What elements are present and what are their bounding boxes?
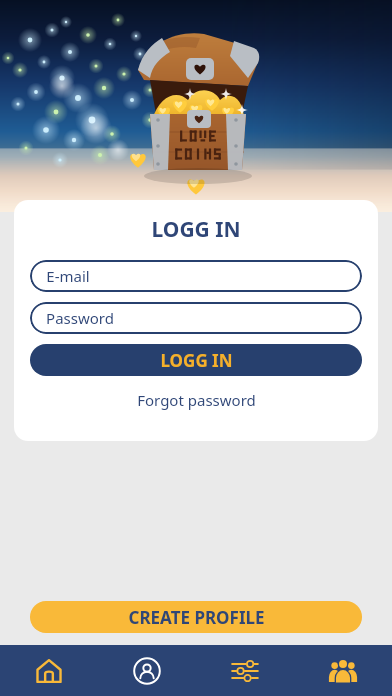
button[interactable]: Community bbox=[294, 645, 392, 696]
button[interactable]: Home bbox=[0, 645, 98, 696]
staticText: E-mail bbox=[46, 266, 90, 286]
button[interactable]: LOGG IN bbox=[30, 344, 362, 376]
staticText: LOGG IN bbox=[160, 349, 233, 372]
button[interactable]: E-mail bbox=[30, 260, 362, 292]
button[interactable]: Profile bbox=[98, 645, 196, 696]
button[interactable]: CREATE PROFILE bbox=[30, 601, 362, 633]
button[interactable]: Password bbox=[30, 302, 362, 334]
staticText: Forgot password bbox=[137, 390, 256, 410]
staticText: CREATE PROFILE bbox=[128, 606, 265, 629]
button[interactable]: Settings bbox=[196, 645, 294, 696]
staticText: LOGG IN bbox=[151, 215, 241, 244]
staticText: Password bbox=[46, 308, 114, 328]
button[interactable]: Forgot password bbox=[131, 388, 262, 412]
